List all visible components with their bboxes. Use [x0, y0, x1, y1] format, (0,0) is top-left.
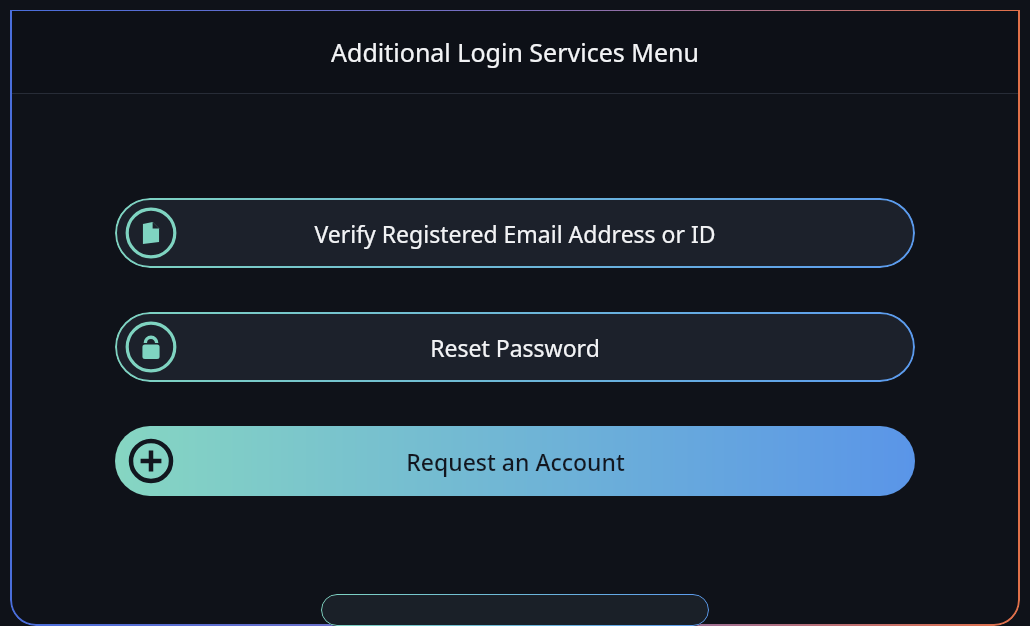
staticText: Request an Account: [406, 446, 625, 477]
button[interactable]: Verify Registered Email Address or ID: [115, 198, 915, 268]
staticText: Additional Login Services Menu: [331, 35, 699, 69]
button[interactable]: Request an Account: [115, 426, 915, 496]
button[interactable]: [321, 594, 709, 626]
button[interactable]: Reset Password: [115, 312, 915, 382]
other: Request an account: [125, 435, 177, 487]
other: Reset password: [125, 321, 177, 373]
staticText: Reset Password: [430, 332, 600, 363]
other: Verify registered email address or ID: [125, 207, 177, 259]
staticText: Verify Registered Email Address or ID: [314, 218, 716, 249]
